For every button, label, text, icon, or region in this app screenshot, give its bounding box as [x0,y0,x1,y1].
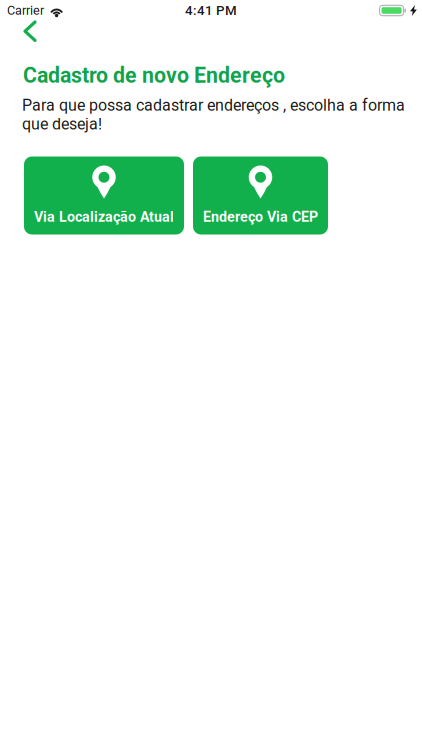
staticText: Cadastro de novo Endereço [23,63,285,88]
button[interactable]: Via Localização Atual [24,156,184,234]
staticText: Para que possa cadastrar endereços , esc… [22,96,405,133]
staticText: Via Localização Atual [34,208,174,225]
staticText: Carrier [7,3,44,18]
button[interactable]: Back [0,21,49,52]
staticText: 4:41 PM [185,3,237,18]
button[interactable]: Endereço Via CEP [193,156,328,234]
staticText: Endereço Via CEP [203,208,318,225]
